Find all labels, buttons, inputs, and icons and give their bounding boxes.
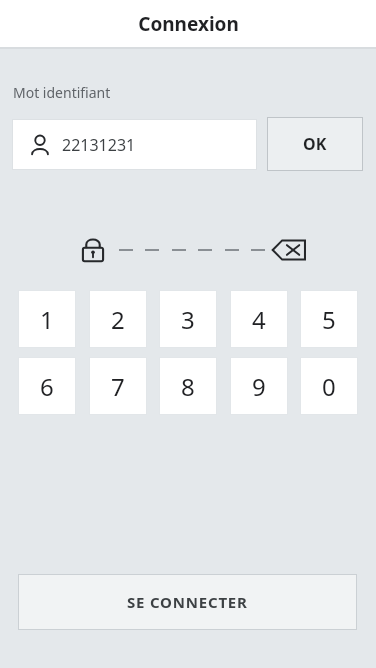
staticText: 6 bbox=[40, 370, 54, 403]
button[interactable]: 3 bbox=[159, 290, 217, 348]
staticText: 2 bbox=[111, 303, 125, 336]
button[interactable]: 1 bbox=[18, 290, 76, 348]
staticText: 1 bbox=[40, 303, 54, 336]
button[interactable]: 0 bbox=[300, 357, 358, 415]
staticText: SE CONNECTER bbox=[127, 592, 248, 612]
button[interactable]: Backspace bbox=[271, 235, 307, 265]
staticText: 7 bbox=[111, 370, 125, 403]
staticText: Mot identifiant bbox=[13, 83, 111, 102]
staticText: 0 bbox=[322, 370, 336, 403]
button[interactable]: 8 bbox=[159, 357, 217, 415]
button[interactable]: 9 bbox=[230, 357, 288, 415]
button[interactable]: 6 bbox=[18, 357, 76, 415]
button[interactable]: OK bbox=[267, 117, 363, 171]
staticText: 5 bbox=[322, 303, 336, 336]
staticText: 3 bbox=[181, 303, 195, 336]
staticText: 9 bbox=[252, 370, 266, 403]
button[interactable]: 7 bbox=[89, 357, 147, 415]
button[interactable]: 4 bbox=[230, 290, 288, 348]
button[interactable]: 5 bbox=[300, 290, 358, 348]
button[interactable]: 2 bbox=[89, 290, 147, 348]
button[interactable]: SE CONNECTER bbox=[18, 574, 357, 630]
staticText: Connexion bbox=[138, 11, 239, 37]
staticText: OK bbox=[303, 133, 327, 155]
staticText: 22131231 bbox=[62, 134, 136, 156]
button[interactable]: 22131231 bbox=[12, 119, 257, 170]
staticText: 4 bbox=[252, 303, 266, 336]
staticText: 8 bbox=[181, 370, 195, 403]
